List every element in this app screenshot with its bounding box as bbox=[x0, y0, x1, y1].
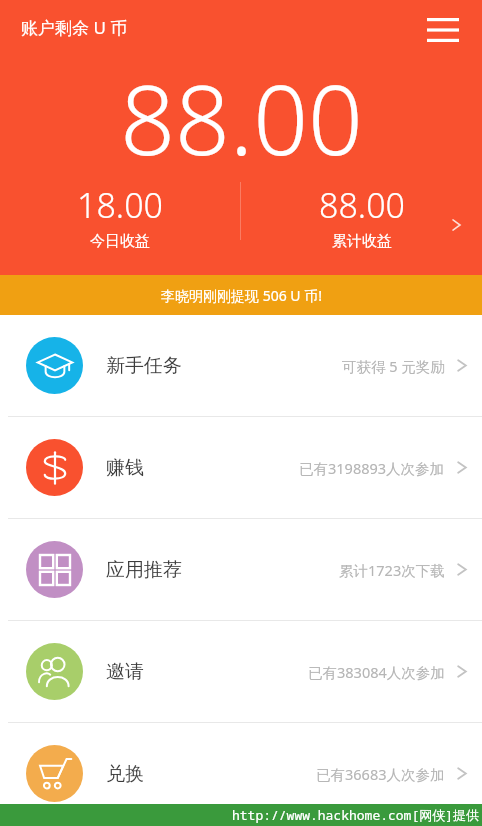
button[interactable]: 李晓明刚刚提现 506 U 币! bbox=[0, 275, 482, 315]
staticText: 今日收益 bbox=[90, 232, 150, 251]
staticText: 可获得 5 元奖励 bbox=[342, 356, 445, 376]
button[interactable]: 兑换 bbox=[0, 723, 482, 824]
staticText: 累计1723次下载 bbox=[339, 560, 445, 580]
staticText: 已有383084人次参加 bbox=[308, 662, 445, 682]
staticText: 应用推荐 bbox=[106, 558, 182, 582]
staticText: 已有3198893人次参加 bbox=[299, 458, 445, 478]
staticText: 邀请 bbox=[106, 660, 144, 684]
button[interactable]: 赚钱 bbox=[0, 417, 482, 518]
button[interactable]: 18.00 bbox=[0, 182, 240, 251]
staticText: 88.00 bbox=[120, 52, 363, 183]
staticText: 兑换 bbox=[106, 762, 144, 786]
button[interactable]: 应用推荐 bbox=[0, 519, 482, 620]
button[interactable]: 邀请 bbox=[0, 621, 482, 722]
staticText: 新手任务 bbox=[106, 354, 182, 378]
staticText: 88.00 bbox=[319, 182, 405, 228]
staticText: 已有36683人次参加 bbox=[316, 764, 445, 784]
button[interactable]: Menu bbox=[422, 10, 464, 50]
staticText: 账户剩余 U 币 bbox=[21, 16, 128, 39]
button[interactable]: More earnings bbox=[436, 205, 476, 245]
staticText: http://www.hackhome.com[网侠]提供 bbox=[232, 806, 480, 824]
staticText: 18.00 bbox=[77, 182, 163, 228]
button[interactable]: 88.00 bbox=[241, 182, 482, 251]
staticText: 赚钱 bbox=[106, 456, 144, 480]
staticText: 累计收益 bbox=[332, 232, 392, 251]
button[interactable]: 新手任务 bbox=[0, 315, 482, 416]
staticText: 李晓明刚刚提现 506 U 币! bbox=[161, 286, 322, 305]
